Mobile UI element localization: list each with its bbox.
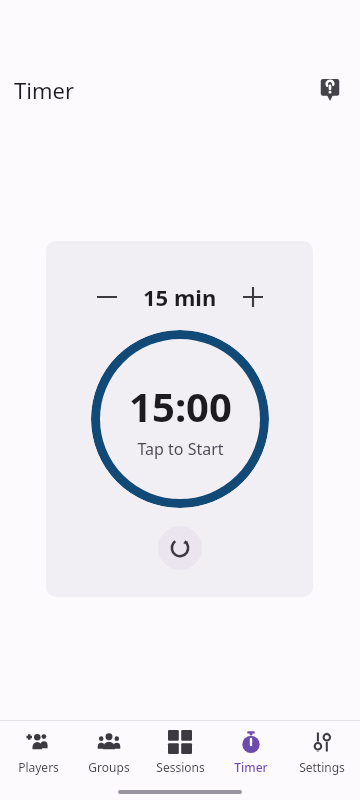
button[interactable]: Increase duration	[231, 275, 275, 319]
button[interactable]: Players	[5, 728, 71, 777]
button[interactable]: 15:00	[91, 330, 269, 508]
button[interactable]: Reset timer	[158, 526, 202, 570]
button[interactable]: Decrease duration	[85, 275, 129, 319]
button[interactable]: Settings	[289, 728, 355, 777]
staticText: Settings	[299, 759, 345, 775]
staticText: 15 min	[143, 282, 217, 312]
staticText: Timer	[14, 75, 74, 105]
staticText: 15:00	[129, 379, 232, 433]
staticText: Timer	[234, 759, 268, 775]
staticText: Groups	[88, 759, 130, 775]
staticText: Tap to Start	[137, 438, 224, 460]
button[interactable]: Timer	[218, 728, 284, 777]
button[interactable]: Help	[310, 70, 350, 110]
button[interactable]: Groups	[76, 728, 142, 777]
staticText: Players	[18, 759, 59, 775]
button[interactable]: Sessions	[147, 728, 213, 777]
staticText: Sessions	[156, 759, 205, 775]
